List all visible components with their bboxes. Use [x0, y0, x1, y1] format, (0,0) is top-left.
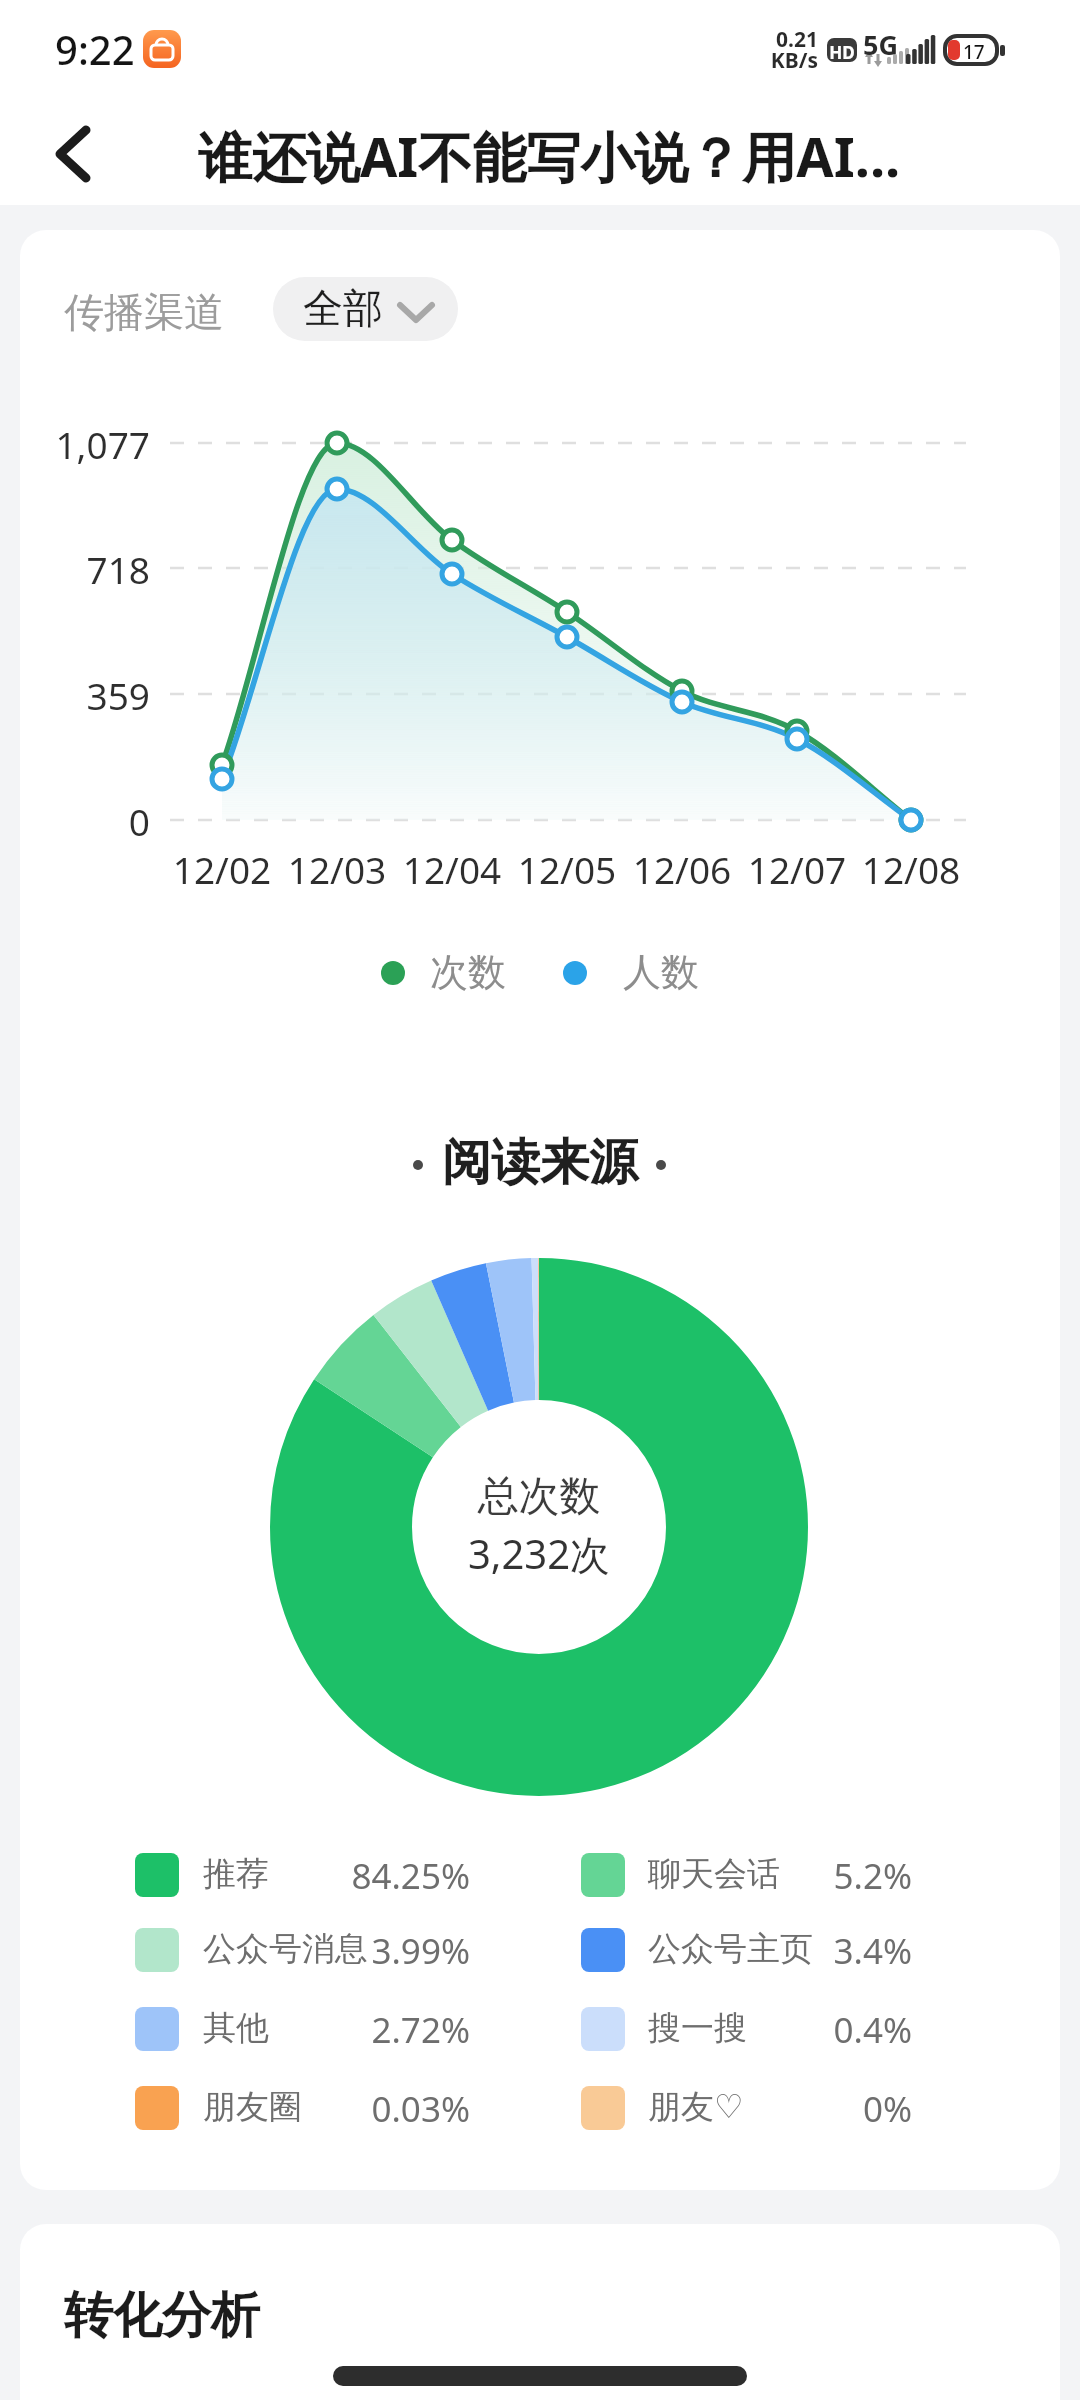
- staticText: 1,077: [0, 419, 150, 469]
- staticText: 搜一搜: [648, 2007, 747, 2049]
- staticText: 0.21: [760, 25, 818, 54]
- staticText: 转化分析: [64, 2285, 260, 2347]
- staticText: 2.72%: [200, 2006, 470, 2054]
- button[interactable]: [273, 277, 458, 341]
- staticText: 359: [0, 670, 150, 720]
- staticText: 718: [0, 544, 150, 594]
- staticText: 人数: [623, 948, 699, 996]
- staticText: 3.4%: [642, 1927, 912, 1975]
- staticText: 传播渠道: [64, 287, 224, 337]
- staticText: 17: [963, 39, 985, 65]
- staticText: 朋友♡: [648, 2086, 744, 2128]
- staticText: 次数: [430, 948, 506, 996]
- staticText: KB/s: [760, 46, 818, 75]
- staticText: 公众号主页: [648, 1928, 813, 1970]
- staticText: 12/07: [732, 844, 862, 894]
- staticText: 0%: [642, 2085, 912, 2133]
- staticText: 公众号消息: [203, 1928, 368, 1970]
- staticText: 0: [0, 796, 150, 846]
- staticText: 12/06: [617, 844, 747, 894]
- button[interactable]: [40, 110, 110, 200]
- staticText: 聊天会话: [648, 1853, 780, 1895]
- staticText: 5.2%: [642, 1852, 912, 1900]
- staticText: 84.25%: [200, 1852, 470, 1900]
- staticText: 0.4%: [642, 2006, 912, 2054]
- staticText: 总次数: [0, 1471, 1078, 1523]
- staticText: 推荐: [203, 1853, 269, 1895]
- staticText: 12/02: [157, 844, 287, 894]
- staticText: 谁还说AI不能写小说？用AI...: [198, 119, 901, 193]
- staticText: 12/05: [502, 844, 632, 894]
- staticText: 5G: [863, 26, 898, 63]
- staticText: 9:22: [55, 22, 135, 76]
- staticText: 3.99%: [200, 1927, 470, 1975]
- staticText: 0.03%: [200, 2085, 470, 2133]
- staticText: 12/08: [846, 844, 976, 894]
- staticText: 其他: [203, 2007, 269, 2049]
- staticText: 3,232次: [0, 1526, 1078, 1581]
- staticText: 阅读来源: [0, 1132, 1080, 1194]
- staticText: 12/04: [387, 844, 517, 894]
- staticText: 全部: [303, 283, 383, 333]
- staticText: 朋友圈: [203, 2086, 302, 2128]
- staticText: 12/03: [272, 844, 402, 894]
- staticText: HD: [827, 41, 857, 64]
